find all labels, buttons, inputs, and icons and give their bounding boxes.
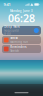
button[interactable]: Strava [2,36,41,44]
staticText: 9:41 [3,2,10,7]
staticText: Stretch [10,49,19,53]
staticText: Morning run [10,40,28,44]
staticText: Focus until 8:00 [4,29,19,36]
staticText: Monday, June 3 [10,9,33,13]
staticText: Strava [10,36,18,40]
staticText: Reminders [10,45,26,49]
button[interactable]: Deep Work [2,26,41,35]
button[interactable]: Reminders [2,45,41,53]
staticText: 06:28 [8,11,35,25]
staticText: Deep Work [4,25,20,28]
